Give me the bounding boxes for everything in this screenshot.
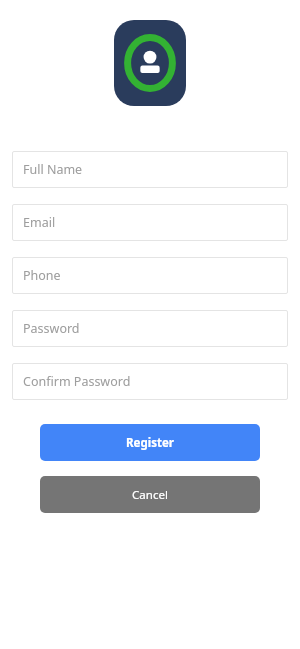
button[interactable]: Email [12,204,288,241]
button[interactable]: Register [40,424,260,461]
button[interactable]: Phone [12,257,288,294]
staticText: Confirm Password [23,373,131,390]
button[interactable]: Confirm Password [12,363,288,400]
staticText: Email [23,214,56,231]
staticText: Register [126,435,174,451]
staticText: Phone [23,267,61,284]
staticText: Full Name [23,161,83,178]
button[interactable]: Cancel [40,476,260,513]
staticText: Cancel [132,487,168,503]
other: App logo [114,20,186,106]
button[interactable]: Full Name [12,151,288,188]
staticText: Password [23,320,80,337]
button[interactable]: Password [12,310,288,347]
